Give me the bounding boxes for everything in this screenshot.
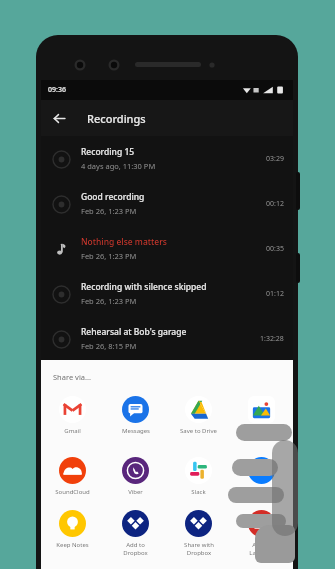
button[interactable]: Messages bbox=[104, 394, 167, 437]
staticText: Nothing else matters bbox=[81, 236, 167, 248]
staticText: Messenger bbox=[246, 488, 278, 496]
staticText: Rehearsal at Bob's garage bbox=[81, 326, 187, 338]
staticText: Feb 26, 1:23 PM bbox=[81, 296, 137, 306]
staticText: Recording with silence skipped bbox=[81, 281, 207, 293]
button[interactable]: Viber bbox=[104, 455, 167, 498]
staticText: Slack bbox=[191, 488, 206, 496]
staticText: 03:29 bbox=[266, 154, 284, 164]
staticText: Another take bbox=[81, 371, 135, 383]
staticText: 1:32:28 bbox=[260, 334, 284, 344]
staticText: Viber bbox=[128, 488, 143, 496]
staticText: 01:12 bbox=[266, 289, 284, 299]
staticText: Share with Dropbox bbox=[184, 541, 214, 557]
button[interactable]: Rehearsal at Bob's garage bbox=[41, 316, 293, 361]
button[interactable]: Nothing else matters bbox=[41, 226, 293, 271]
staticText: Recording 15 bbox=[81, 146, 135, 158]
button[interactable]: Recording 15 bbox=[41, 136, 293, 181]
button[interactable]: Another take bbox=[41, 361, 293, 406]
button[interactable]: Keep Notes bbox=[41, 508, 104, 551]
button[interactable]: Good recording bbox=[41, 181, 293, 226]
staticText: Add to Lastpass bbox=[249, 541, 274, 557]
button[interactable]: Messenger bbox=[230, 455, 293, 498]
staticText: 4 days ago, 11:30 PM bbox=[81, 161, 156, 171]
staticText: Keep Notes bbox=[56, 541, 89, 549]
staticText: 09:36 bbox=[48, 85, 66, 95]
staticText: Feb 26, 8:15 PM bbox=[81, 341, 137, 351]
staticText: Feb 26, 1:23 PM bbox=[81, 206, 137, 216]
staticText: Messages bbox=[122, 427, 150, 435]
button[interactable]: Add to Lastpass bbox=[230, 508, 293, 559]
staticText: 00:12 bbox=[266, 199, 284, 209]
button[interactable]: Recording with silence skipped bbox=[41, 271, 293, 316]
button[interactable]: Send with Photos bbox=[230, 394, 293, 445]
button[interactable]: Save to Drive bbox=[167, 394, 230, 437]
staticText: SoundCloud bbox=[55, 488, 90, 496]
staticText: Share via... bbox=[53, 372, 92, 382]
button[interactable]: Gmail bbox=[41, 394, 104, 437]
staticText: Feb 26, 1:23 PM bbox=[81, 251, 137, 261]
staticText: Save to Drive bbox=[180, 427, 217, 435]
staticText: Recordings bbox=[87, 111, 146, 126]
button[interactable]: SoundCloud bbox=[41, 455, 104, 498]
button[interactable]: Add to Dropbox bbox=[104, 508, 167, 559]
button[interactable]: Share with Dropbox bbox=[167, 508, 230, 559]
staticText: Send with Photos bbox=[248, 427, 276, 443]
staticText: 00:35 bbox=[266, 244, 284, 254]
button[interactable]: Back bbox=[41, 100, 77, 136]
staticText: Add to Dropbox bbox=[123, 541, 148, 557]
staticText: Gmail bbox=[64, 427, 81, 435]
staticText: Good recording bbox=[81, 191, 145, 203]
button[interactable]: Slack bbox=[167, 455, 230, 498]
